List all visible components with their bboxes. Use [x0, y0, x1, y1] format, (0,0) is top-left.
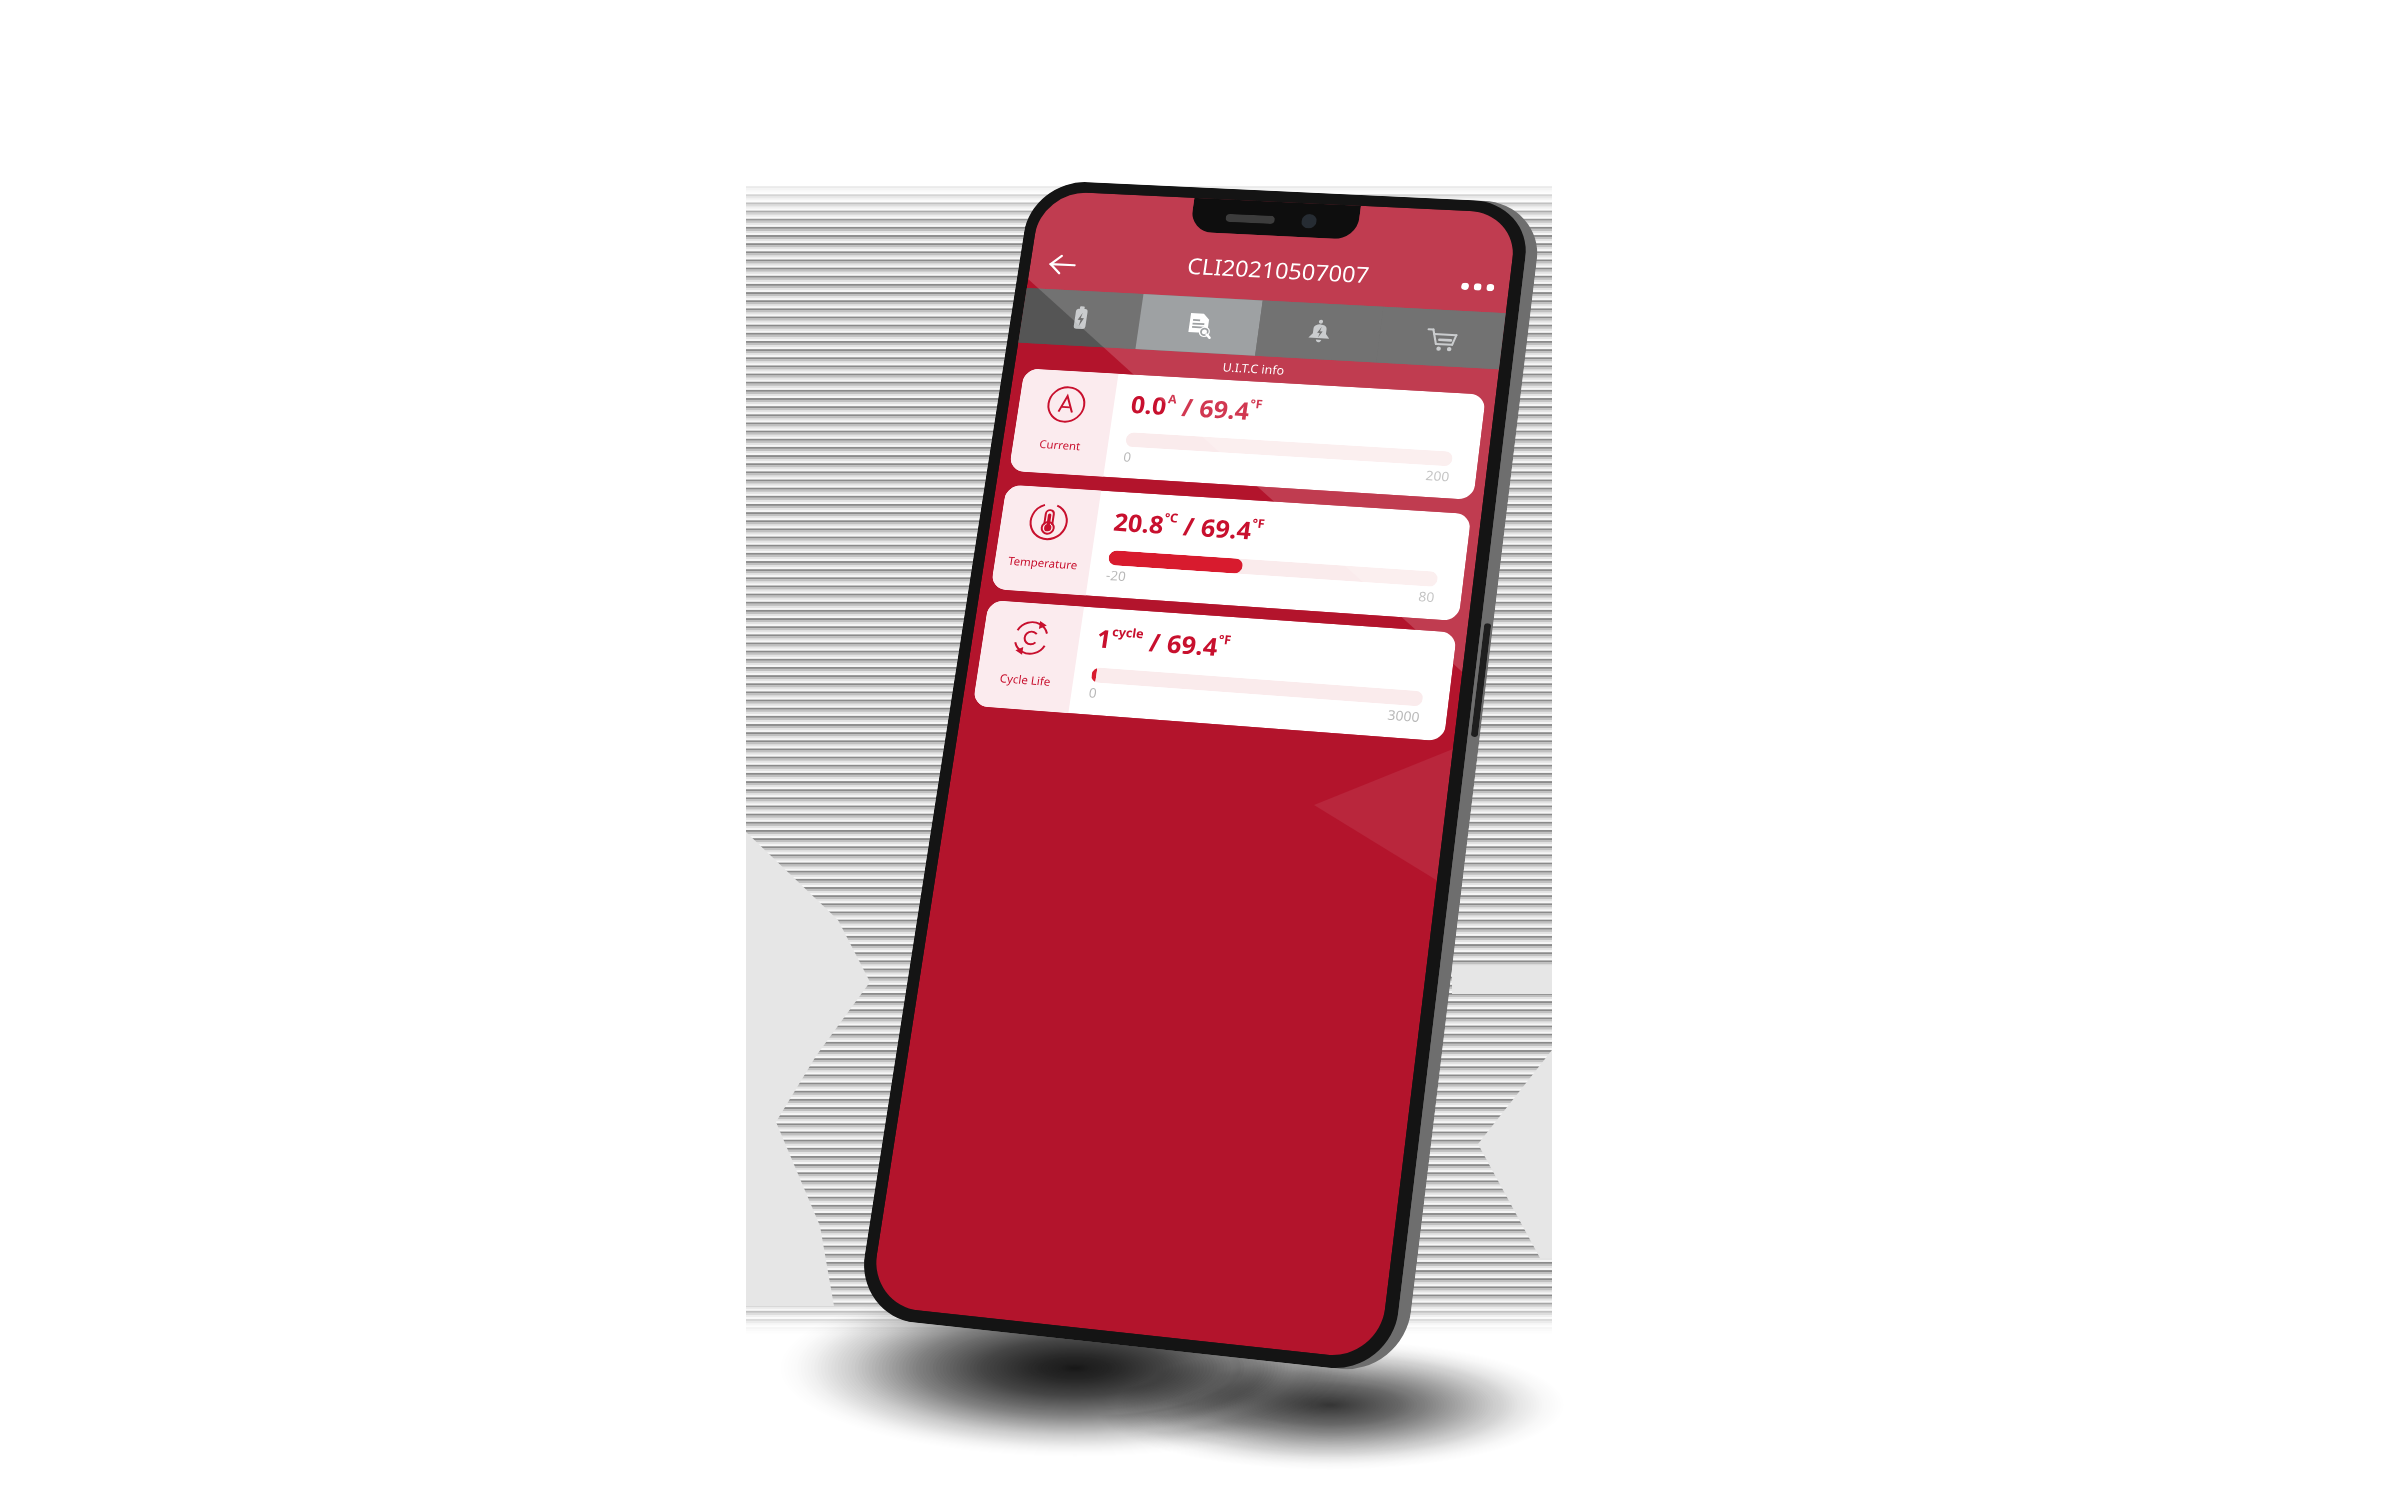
- staticText: /: [1175, 509, 1203, 543]
- staticText: CLI20210507007: [1185, 250, 1371, 289]
- staticText: Cycle Life: [999, 670, 1052, 689]
- staticText: 80: [1417, 587, 1436, 606]
- staticText: Current: [1038, 436, 1082, 453]
- button[interactable]: More options: [1448, 270, 1507, 304]
- staticText: A: [1167, 390, 1178, 407]
- staticText: 69.4: [1165, 626, 1220, 663]
- staticText: 69.4: [1199, 510, 1254, 546]
- button[interactable]: Alerts: [1255, 300, 1383, 362]
- staticText: cycle: [1111, 623, 1145, 642]
- staticText: 200: [1425, 466, 1451, 485]
- button[interactable]: Store: [1376, 307, 1506, 369]
- staticText: 0: [1122, 448, 1133, 466]
- staticText: °F: [1218, 630, 1233, 648]
- button[interactable]: Cycle Life: [972, 600, 1457, 741]
- staticText: Temperature: [1007, 553, 1079, 572]
- button[interactable]: Back: [1036, 242, 1088, 287]
- staticText: °F: [1251, 514, 1266, 532]
- button[interactable]: Battery: [1018, 288, 1143, 349]
- staticText: 3000: [1386, 705, 1422, 726]
- staticText: -20: [1105, 566, 1128, 585]
- staticText: 1: [1095, 621, 1114, 655]
- button[interactable]: Current: [1009, 368, 1486, 500]
- staticText: /: [1174, 390, 1202, 423]
- staticText: 0: [1088, 683, 1099, 702]
- staticText: °C: [1164, 509, 1179, 526]
- staticText: /: [1141, 624, 1170, 659]
- staticText: U.I.T.C info: [1222, 358, 1286, 378]
- button[interactable]: Temperature: [991, 485, 1472, 621]
- staticText: 20.8: [1112, 505, 1166, 540]
- staticText: 69.4: [1197, 391, 1252, 426]
- staticText: °F: [1249, 395, 1264, 412]
- staticText: 0.0: [1129, 387, 1170, 421]
- button[interactable]: Reports: [1135, 294, 1263, 356]
